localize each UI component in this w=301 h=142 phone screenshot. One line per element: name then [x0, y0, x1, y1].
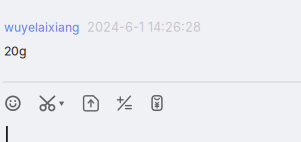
button[interactable]: Screenshot — [39, 95, 83, 112]
button[interactable]: Red packet — [151, 95, 175, 112]
staticText: 20g — [4, 43, 27, 58]
button[interactable]: Emoji — [5, 95, 39, 112]
button[interactable]: Formula — [116, 95, 151, 112]
button[interactable]: Upload file — [83, 95, 116, 112]
staticText: 2024-6-1 14:26:28 — [87, 19, 201, 35]
staticText: wuyelaixiang — [4, 20, 79, 35]
